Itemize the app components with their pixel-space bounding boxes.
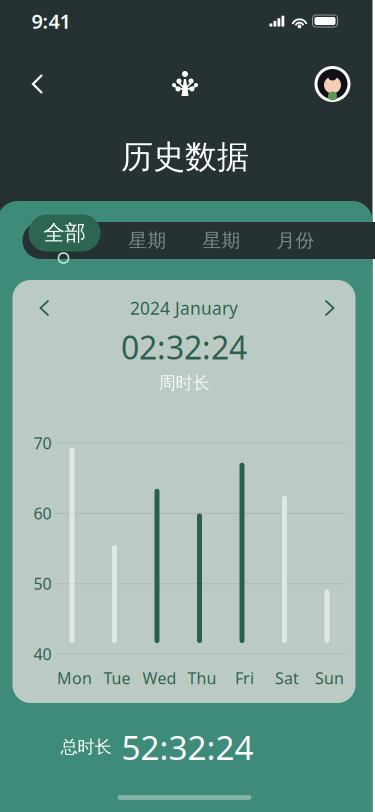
button[interactable]: Back	[15, 62, 59, 106]
staticText: 52:32:24	[121, 725, 253, 769]
staticText: 星期	[128, 229, 166, 252]
staticText: 全部	[43, 220, 85, 246]
staticText: Sun	[315, 667, 344, 689]
button[interactable]: Profile	[310, 62, 354, 106]
staticText: Thu	[187, 667, 216, 689]
staticText: Wed	[142, 667, 176, 689]
staticText: 50	[33, 573, 51, 594]
staticText: 总时长	[60, 736, 111, 758]
staticText: 周时长	[158, 372, 209, 394]
button[interactable]: 星期	[184, 222, 258, 259]
button[interactable]: 星期	[110, 222, 184, 259]
staticText: 月份	[276, 229, 314, 252]
staticText: Sat	[275, 667, 299, 689]
staticText: 02:32:24	[121, 326, 247, 368]
staticText: 2024 January	[130, 296, 238, 319]
staticText: 历史数据	[121, 137, 249, 177]
staticText: 70	[33, 432, 51, 454]
button[interactable]: Next month	[311, 292, 347, 324]
staticText: 40	[33, 643, 51, 665]
staticText: Mon	[57, 667, 92, 689]
staticText: Fri	[235, 667, 254, 689]
button[interactable]: Previous month	[26, 292, 62, 324]
button[interactable]: 全部	[28, 214, 100, 251]
staticText: 星期	[202, 229, 240, 252]
staticText: 9:41	[31, 8, 70, 34]
button[interactable]: 月份	[258, 222, 332, 259]
staticText: Tue	[103, 667, 130, 689]
staticText: 60	[33, 503, 51, 524]
